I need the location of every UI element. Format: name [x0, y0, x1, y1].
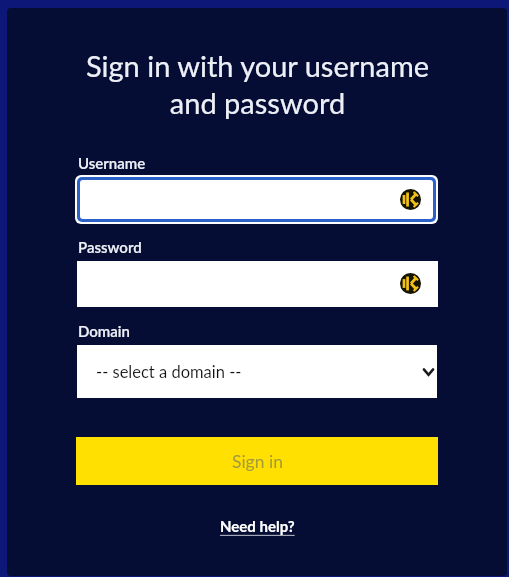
button[interactable]: Need help?	[220, 517, 295, 535]
staticText: Sign in with your username and password	[3, 48, 509, 120]
staticText: Sign in	[232, 451, 283, 472]
staticText: Username	[78, 154, 146, 172]
staticText: -- select a domain --	[96, 362, 242, 382]
staticText: Domain	[78, 322, 130, 340]
button[interactable]: Sign in	[76, 437, 438, 485]
button[interactable]	[77, 261, 438, 307]
staticText: Password	[78, 238, 142, 256]
button[interactable]	[75, 175, 438, 224]
button[interactable]: -- select a domain --	[77, 345, 437, 398]
